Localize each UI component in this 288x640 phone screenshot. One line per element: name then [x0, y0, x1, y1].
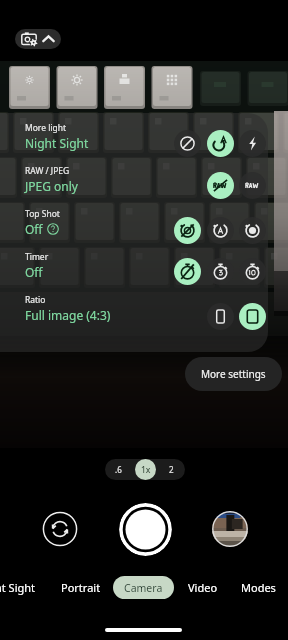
button[interactable]: Top Shot on	[239, 217, 266, 244]
staticText: 1x	[141, 464, 151, 476]
button[interactable]: Ratio	[25, 294, 111, 323]
staticText: RAW / JPEG	[25, 165, 70, 177]
staticText: Full image (4:3)	[25, 307, 111, 323]
staticText: Modes	[241, 580, 276, 595]
button[interactable]: More light	[25, 122, 89, 151]
button[interactable]: Night Sight	[0, 576, 36, 599]
button[interactable]: Camera settings	[15, 29, 61, 49]
button[interactable]: RAW + JPEG	[239, 172, 266, 199]
staticText: Timer	[25, 251, 49, 263]
button[interactable]: Modes	[241, 576, 276, 599]
button[interactable]: Timer	[25, 251, 49, 280]
button[interactable]: Timer off	[174, 258, 201, 285]
button[interactable]: 16:9 ratio	[207, 303, 234, 330]
button[interactable]: 2	[158, 459, 185, 480]
button[interactable]: Top Shot auto	[207, 217, 234, 244]
button[interactable]: Camera	[113, 576, 174, 599]
staticText: .6	[115, 464, 122, 475]
button[interactable]: More settings	[185, 357, 282, 391]
staticText: Night Sight	[0, 580, 36, 595]
staticText: Night Sight	[25, 135, 89, 151]
staticText: More settings	[201, 367, 266, 381]
button[interactable]: Top Shot	[25, 208, 60, 237]
button[interactable]: Full image 4:3	[239, 303, 266, 330]
button[interactable]: 10 second timer	[239, 258, 266, 285]
staticText: Off	[25, 221, 43, 237]
staticText: Top Shot	[25, 208, 60, 220]
button[interactable]: Top Shot off	[174, 217, 201, 244]
button[interactable]: Flash off	[174, 130, 201, 157]
staticText: Ratio	[25, 294, 46, 306]
button[interactable]: RAW / JPEG	[25, 165, 78, 194]
button[interactable]: Night Sight auto	[207, 130, 234, 157]
button[interactable]: 1x	[135, 459, 156, 480]
staticText: Off	[25, 264, 43, 280]
button[interactable]: Flash on	[239, 130, 266, 157]
button[interactable]: .6	[105, 459, 132, 480]
staticText: Video	[188, 580, 218, 595]
staticText: JPEG only	[25, 178, 78, 194]
button[interactable]: 3 second timer	[207, 258, 234, 285]
staticText: More light	[25, 122, 67, 134]
button[interactable]: Switch camera	[42, 511, 78, 547]
button[interactable]: JPEG only	[207, 172, 234, 199]
button[interactable]: Shutter	[119, 503, 172, 556]
staticText: Portrait	[61, 580, 101, 595]
staticText: 2	[169, 464, 174, 475]
button[interactable]: Gallery	[212, 511, 248, 547]
staticText: Camera	[124, 581, 163, 595]
button[interactable]: Portrait	[61, 576, 101, 599]
button[interactable]: Video	[188, 576, 218, 599]
